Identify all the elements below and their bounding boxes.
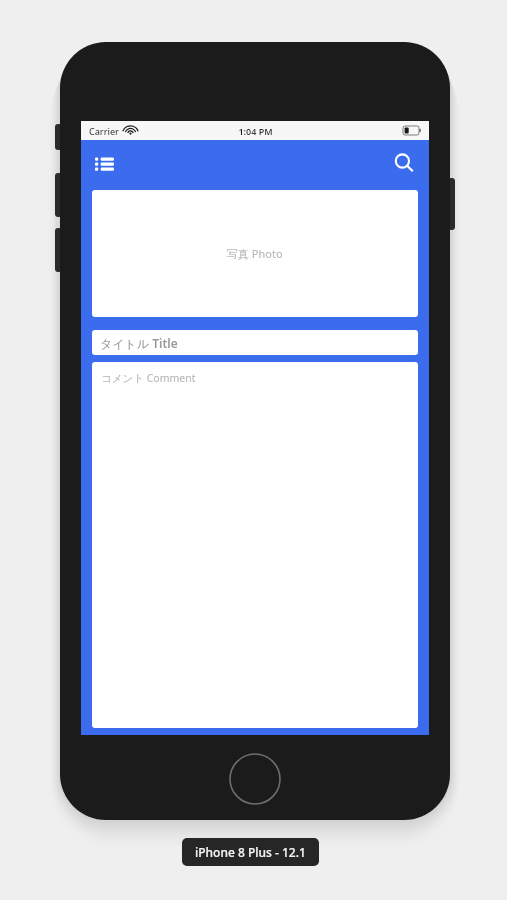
button[interactable]: Menu [87,146,121,180]
button[interactable]: iPhone 8 Plus - 12.1 [182,838,319,866]
staticText: 写真 Photo [227,246,283,261]
staticText: 1:04 PM [238,125,273,137]
staticText: タイトル Title [100,335,178,351]
staticText: iPhone 8 Plus - 12.1 [195,844,306,860]
staticText: Carrier [89,125,119,137]
button[interactable]: タイトル Title [92,330,418,355]
button[interactable]: Search [387,146,421,180]
staticText: コメント Comment [101,371,196,385]
button[interactable]: 写真 Photo [92,190,418,317]
button[interactable]: Home [228,752,282,806]
